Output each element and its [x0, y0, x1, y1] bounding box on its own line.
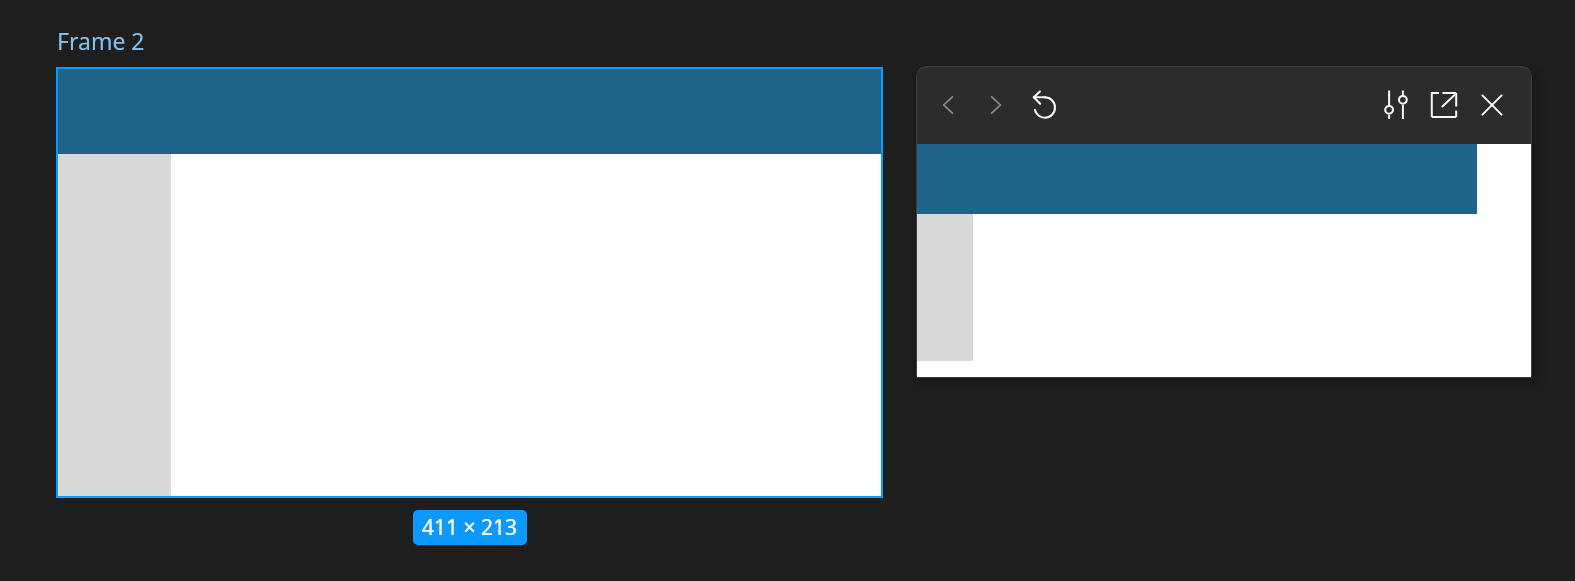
button[interactable]: Forward — [979, 88, 1013, 122]
button[interactable]: Open in new window — [1427, 88, 1461, 122]
button[interactable] — [58, 69, 881, 496]
button[interactable]: Close — [1475, 88, 1509, 122]
button[interactable]: Reload — [1027, 88, 1061, 122]
button[interactable]: Back — [931, 88, 965, 122]
staticText: Frame 2 — [57, 25, 145, 56]
staticText: 411 × 213 — [422, 513, 518, 542]
button[interactable]: Settings — [1379, 88, 1413, 122]
